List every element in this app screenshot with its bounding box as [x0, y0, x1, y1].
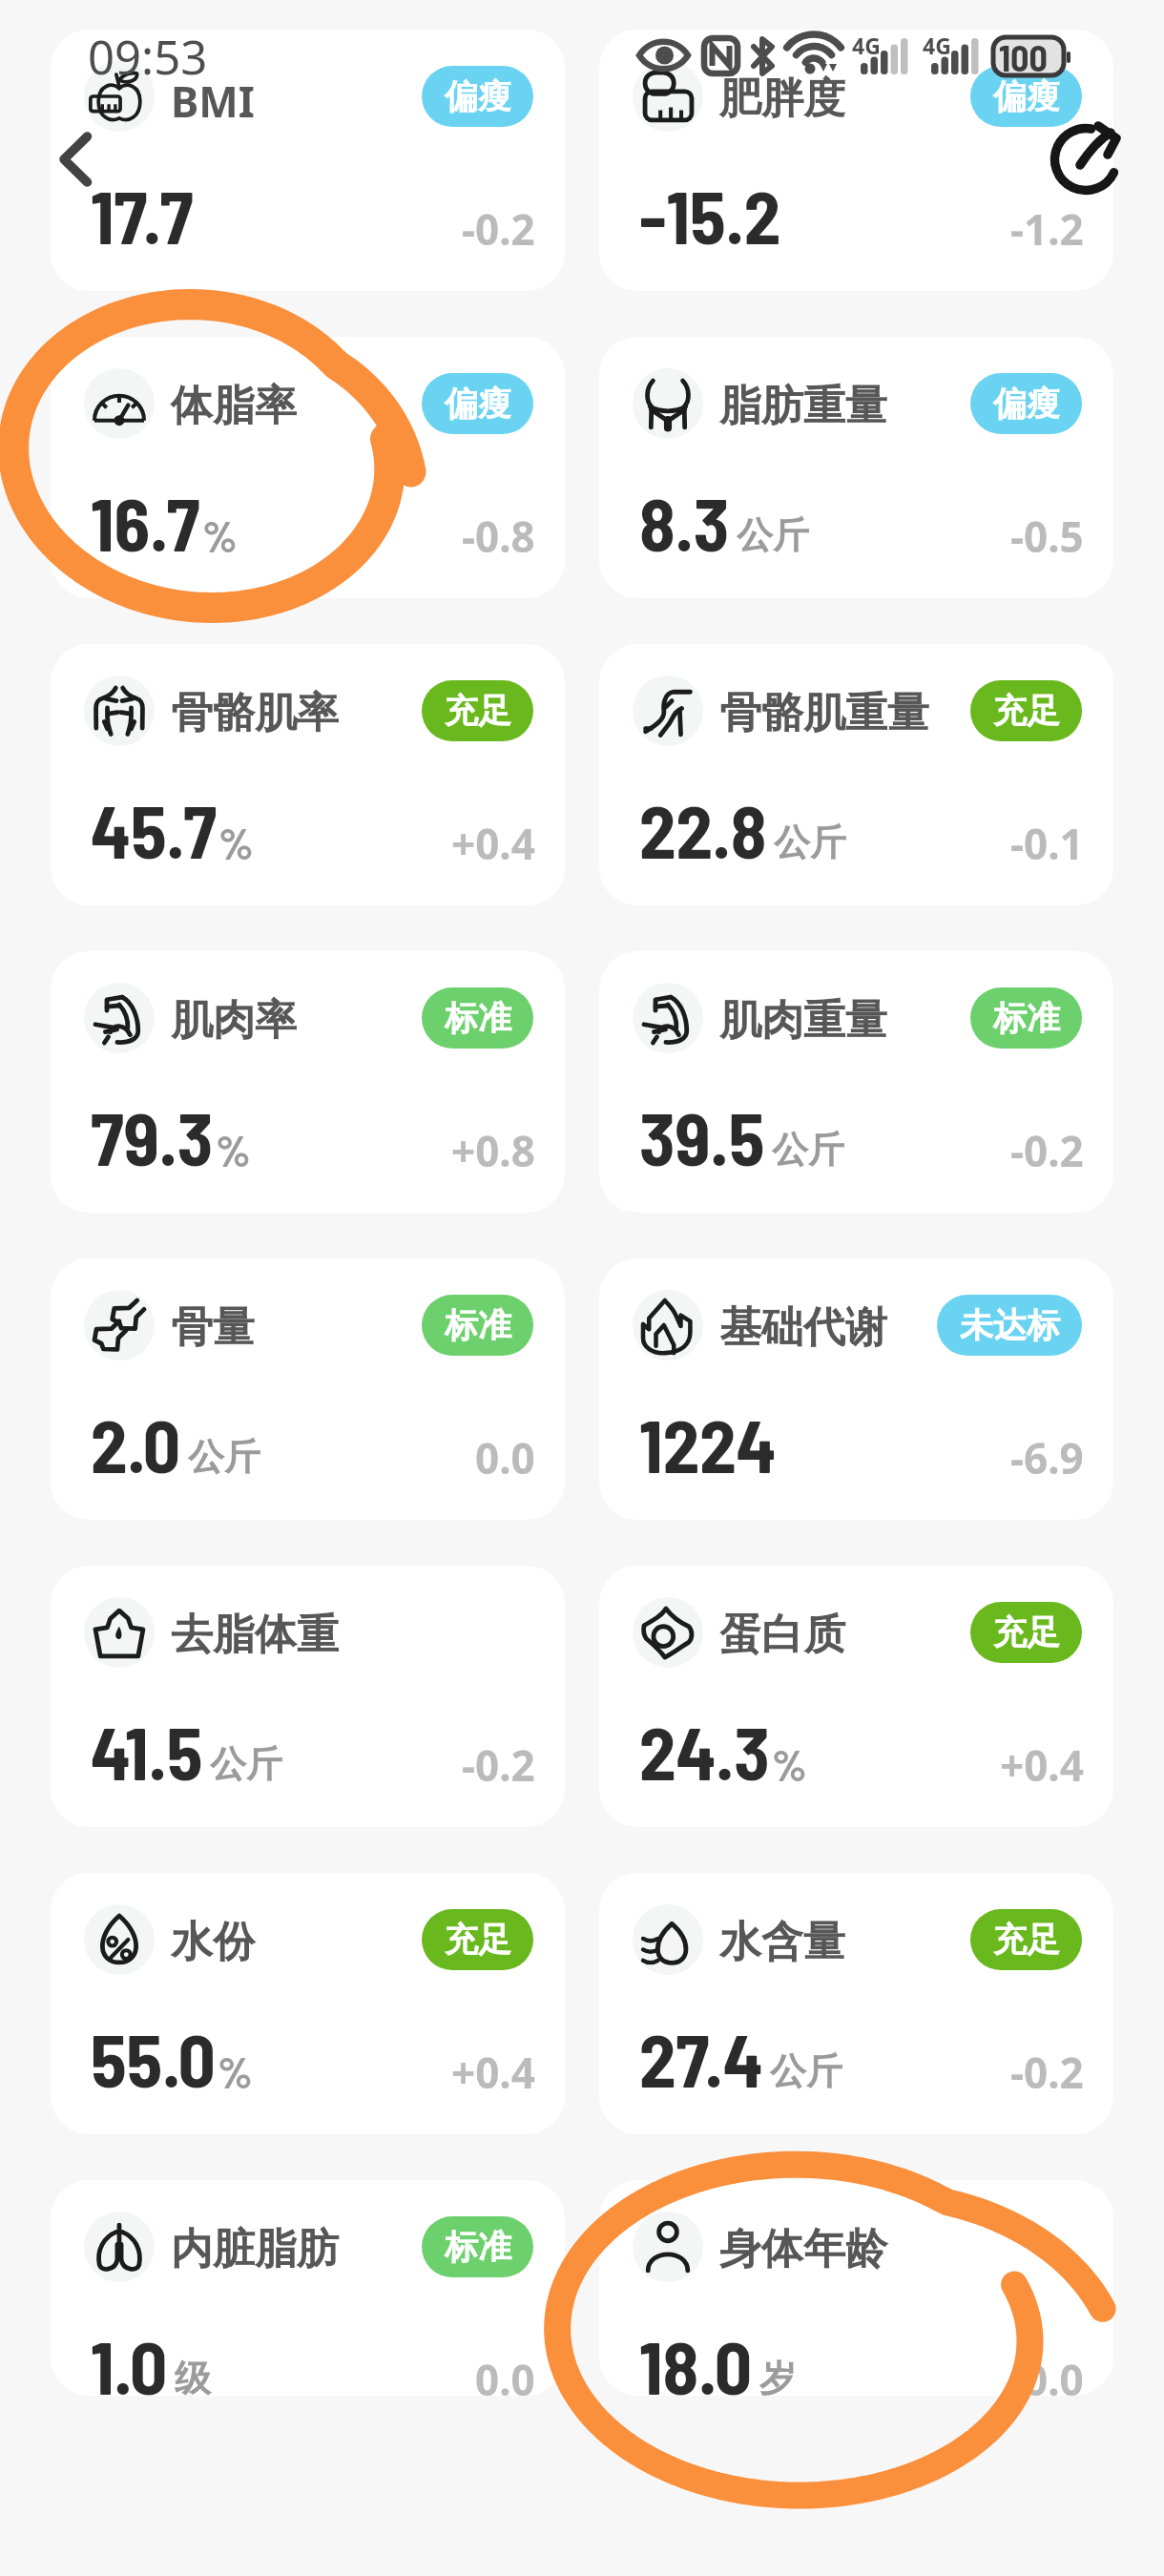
staticText: 充足 — [445, 690, 511, 732]
staticText: 公斤 — [774, 820, 846, 865]
button[interactable]: 内脏脂肪 — [51, 2180, 565, 2396]
staticText: 未达标 — [960, 1304, 1060, 1346]
staticText: 内脏脂肪 — [171, 2223, 339, 2275]
staticText: 39.5 — [639, 1092, 765, 1180]
staticText: 标准 — [993, 997, 1060, 1039]
button[interactable]: 标准 — [422, 1295, 533, 1356]
staticText: -0.2 — [462, 200, 535, 258]
staticText: 岁 — [759, 2356, 796, 2396]
button[interactable]: 脂肪重量 — [599, 337, 1113, 598]
staticText: 22.8 — [639, 785, 767, 873]
staticText: 18.0 — [639, 2321, 753, 2396]
staticText: 偏瘦 — [445, 75, 511, 117]
button[interactable]: 蛋白质 — [599, 1566, 1113, 1827]
button[interactable]: 偏瘦 — [970, 373, 1082, 434]
staticText: -0.1 — [1010, 815, 1084, 872]
staticText: -0.8 — [462, 508, 535, 565]
staticText: 标准 — [445, 997, 511, 1039]
button[interactable]: Back — [41, 115, 110, 184]
staticText: 1.0 — [91, 2321, 168, 2396]
button[interactable]: 骨骼肌重量 — [599, 644, 1113, 905]
staticText: 0.0 — [1024, 2351, 1084, 2396]
staticText: 偏瘦 — [993, 75, 1060, 117]
button[interactable]: 肌肉率 — [51, 951, 565, 1213]
staticText: 肌肉重量 — [719, 994, 887, 1047]
staticText: -15.2 — [639, 171, 781, 259]
button[interactable]: 体脂率 — [51, 337, 565, 598]
staticText: 公斤 — [772, 1127, 844, 1173]
button[interactable]: 肥胖度 — [599, 30, 1113, 291]
button[interactable]: 充足 — [970, 680, 1082, 741]
staticText: 级 — [175, 2356, 211, 2396]
button[interactable]: 标准 — [422, 987, 533, 1049]
staticText: % — [216, 1123, 251, 1175]
button[interactable]: 标准 — [970, 987, 1082, 1049]
button[interactable]: 偏瘦 — [422, 373, 533, 434]
staticText: % — [772, 1737, 807, 1790]
staticText: 8.3 — [639, 478, 730, 566]
staticText: 充足 — [445, 1919, 511, 1961]
staticText: 79.3 — [91, 1092, 214, 1180]
button[interactable]: 标准 — [422, 2216, 533, 2277]
button[interactable]: 充足 — [970, 1602, 1082, 1663]
staticText: 公斤 — [737, 512, 809, 558]
button[interactable]: 充足 — [422, 1909, 533, 1970]
button[interactable]: 未达标 — [937, 1295, 1082, 1356]
staticText: 体脂率 — [171, 380, 297, 432]
button[interactable]: 骨骼肌率 — [51, 644, 565, 905]
button[interactable]: 去脂体重 — [51, 1566, 565, 1827]
staticText: 16.7 — [91, 478, 200, 566]
staticText: 100 — [999, 35, 1048, 79]
staticText: BMI — [171, 73, 255, 130]
staticText: 水含量 — [719, 1916, 845, 1968]
staticText: +0.4 — [1000, 1736, 1084, 1794]
staticText: 骨量 — [171, 1301, 255, 1354]
button[interactable]: Refresh — [1048, 121, 1124, 197]
staticText: 27.4 — [639, 2014, 763, 2102]
button[interactable]: 充足 — [422, 680, 533, 741]
staticText: 17.7 — [91, 171, 194, 259]
staticText: 45.7 — [91, 785, 217, 873]
staticText: 肥胖度 — [719, 73, 845, 125]
staticText: 身体年龄 — [719, 2223, 887, 2275]
staticText: 偏瘦 — [445, 383, 511, 425]
staticText: 标准 — [445, 2226, 511, 2268]
staticText: 09:53 — [88, 25, 208, 89]
button[interactable]: 偏瘦 — [422, 66, 533, 127]
staticText: +0.4 — [451, 2044, 535, 2101]
staticText: 充足 — [993, 1611, 1060, 1653]
button[interactable]: 基础代谢 — [599, 1258, 1113, 1520]
staticText: -6.9 — [1010, 1429, 1084, 1486]
staticText: 水份 — [171, 1916, 255, 1968]
staticText: -0.2 — [1010, 1122, 1084, 1179]
staticText: 骨骼肌率 — [171, 687, 339, 739]
staticText: 公斤 — [210, 1741, 282, 1787]
button[interactable]: 肌肉重量 — [599, 951, 1113, 1213]
staticText: -0.5 — [1010, 508, 1084, 565]
staticText: 充足 — [993, 1919, 1060, 1961]
staticText: +0.4 — [451, 815, 535, 872]
staticText: 2.0 — [91, 1400, 181, 1487]
staticText: 去脂体重 — [171, 1609, 339, 1661]
button[interactable]: 充足 — [970, 1909, 1082, 1970]
button[interactable]: 骨量 — [51, 1258, 565, 1520]
staticText: +0.8 — [451, 1122, 535, 1179]
button[interactable]: 身体年龄 — [599, 2180, 1113, 2396]
button[interactable]: 水份 — [51, 1873, 565, 2134]
staticText: -1.2 — [1010, 200, 1084, 258]
button[interactable]: BMI — [51, 30, 565, 291]
staticText: -0.2 — [1010, 2044, 1084, 2101]
staticText: 4G — [923, 31, 951, 60]
staticText: 标准 — [445, 1304, 511, 1346]
staticText: 脂肪重量 — [719, 380, 887, 432]
staticText: 24.3 — [639, 1707, 770, 1795]
staticText: % — [218, 2045, 253, 2097]
staticText: 基础代谢 — [719, 1301, 887, 1354]
staticText: 蛋白质 — [719, 1609, 845, 1661]
staticText: 41.5 — [91, 1707, 203, 1795]
button[interactable]: 水含量 — [599, 1873, 1113, 2134]
staticText: 充足 — [993, 690, 1060, 732]
staticText: 55.0 — [91, 2014, 216, 2102]
staticText: % — [202, 509, 238, 561]
button[interactable]: 偏瘦 — [970, 66, 1082, 127]
